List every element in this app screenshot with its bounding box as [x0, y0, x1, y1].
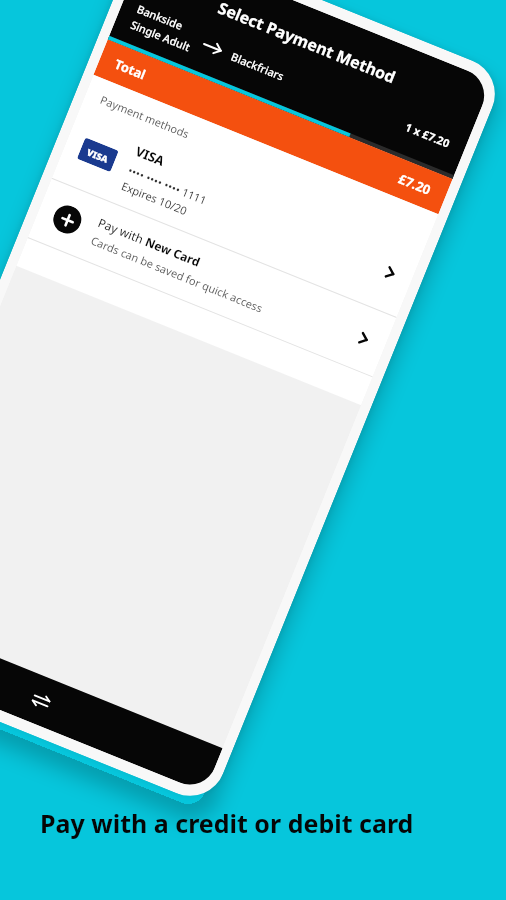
other: Add new card [49, 201, 86, 238]
staticText: Payment methods [98, 92, 192, 141]
staticText: Single Adult [128, 17, 192, 54]
staticText: VISA [85, 145, 110, 165]
staticText: Pay with a credit or debit card [40, 806, 414, 840]
staticText: Bankside [135, 1, 185, 33]
staticText: Select Payment Method [215, 0, 399, 88]
button[interactable]: Add new card [28, 179, 396, 376]
staticText: 1 x £7.20 [403, 119, 452, 151]
staticText: New Card [143, 233, 203, 270]
staticText: Pay with [96, 214, 149, 248]
staticText: Blackfriars [229, 49, 286, 84]
button[interactable]: VISA [52, 105, 426, 317]
staticText: •••• •••• •••• 1111 [126, 162, 209, 208]
staticText: VISA [133, 142, 167, 170]
staticText: £7.20 [396, 169, 434, 199]
staticText: Total [112, 55, 149, 84]
staticText: Expires 10/20 [119, 178, 190, 218]
other: Navigation [0, 609, 223, 793]
staticText: Cards can be saved for quick access [89, 233, 265, 315]
